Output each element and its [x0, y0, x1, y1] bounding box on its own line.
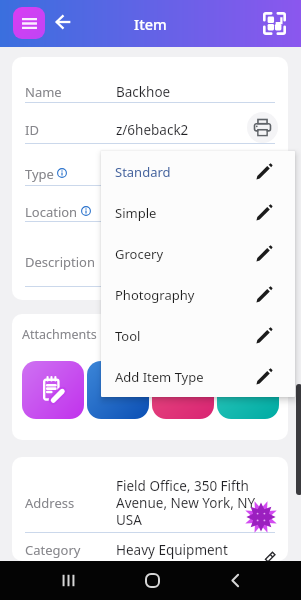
button[interactable]: Tool — [101, 315, 295, 356]
staticText: Tool — [115, 327, 141, 345]
button[interactable]: Print — [247, 112, 278, 143]
button[interactable]: Location — [25, 186, 275, 221]
button[interactable]: Photography — [101, 274, 295, 315]
staticText: Simple — [115, 204, 157, 222]
button[interactable]: Scan code — [257, 6, 291, 40]
staticText: Heavy Equipment — [116, 541, 228, 559]
staticText: Add Item Type — [115, 368, 204, 386]
button[interactable]: Edit category — [262, 549, 278, 561]
staticText: ID — [25, 121, 39, 139]
button[interactable]: Standard — [101, 151, 295, 192]
button[interactable]: ID — [25, 103, 275, 143]
button[interactable]: Address — [25, 457, 275, 532]
staticText: Photography — [115, 286, 195, 304]
staticText: Backhoe — [116, 83, 171, 101]
button[interactable]: Home — [136, 564, 168, 596]
staticText: Description — [25, 253, 95, 271]
staticText: z/6heback2 — [116, 121, 189, 139]
button[interactable]: Back — [219, 564, 251, 596]
staticText: Standard — [115, 163, 171, 181]
staticText: Item — [134, 14, 167, 34]
button[interactable]: Name — [25, 57, 275, 102]
staticText: Field Office, 350 Fifth Avenue, New York… — [116, 477, 256, 528]
button[interactable]: Description — [25, 222, 275, 286]
button[interactable]: Recent apps — [52, 564, 84, 596]
button[interactable]: Attachment — [22, 361, 84, 419]
staticText: Name — [25, 83, 62, 101]
staticText: Category — [25, 541, 81, 559]
button[interactable]: Open navigation menu — [13, 7, 45, 39]
staticText: Attachments — [22, 326, 97, 343]
button[interactable]: Back — [48, 7, 78, 37]
staticText: Address — [25, 494, 75, 512]
staticText: Location — [25, 203, 78, 221]
button[interactable]: Category — [25, 533, 275, 561]
button[interactable]: Attachment — [87, 361, 149, 419]
staticText: Type — [25, 165, 54, 183]
button[interactable]: Type — [25, 144, 275, 185]
button[interactable]: Grocery — [101, 233, 295, 274]
button[interactable]: Attachment — [152, 361, 214, 419]
button[interactable]: Attachment — [217, 361, 279, 419]
button[interactable]: Add Item Type — [101, 356, 295, 397]
button[interactable]: Simple — [101, 192, 295, 233]
staticText: Grocery — [115, 245, 164, 263]
